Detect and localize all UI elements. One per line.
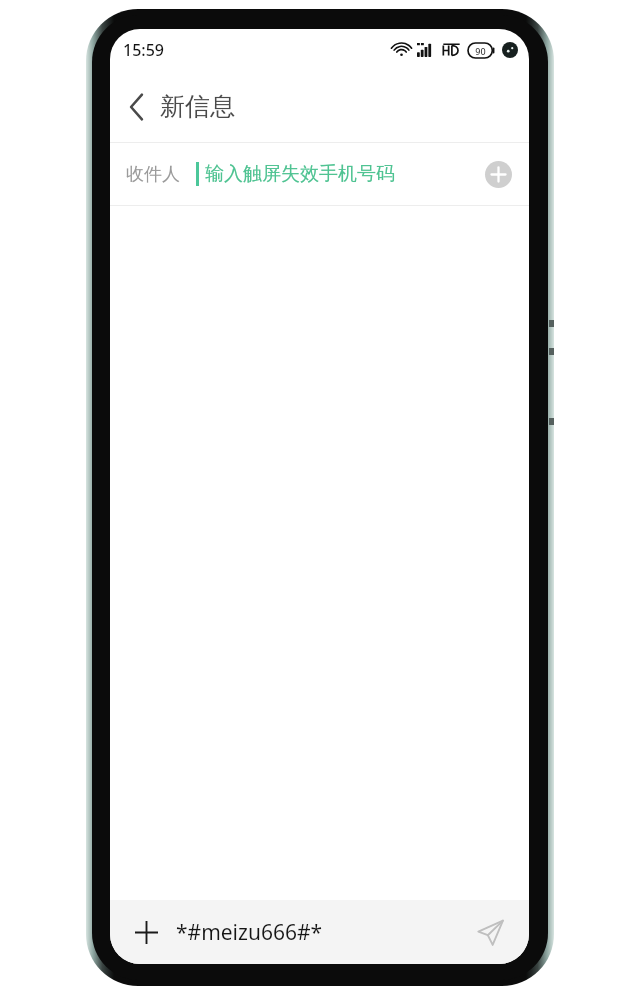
staticText: 输入触屏失效手机号码 <box>205 162 395 186</box>
staticText: 90 <box>475 45 486 57</box>
button[interactable]: Add attachment <box>126 912 166 952</box>
staticText: *#meizu666#* <box>176 918 323 947</box>
button[interactable]: Add contact <box>481 157 515 191</box>
button[interactable]: Back <box>114 85 158 129</box>
button[interactable]: 收件人 <box>110 143 529 205</box>
staticText: 新信息 <box>160 91 235 122</box>
button[interactable]: Send <box>469 911 511 953</box>
staticText: 收件人 <box>126 163 180 186</box>
staticText: 15:59 <box>123 39 164 61</box>
